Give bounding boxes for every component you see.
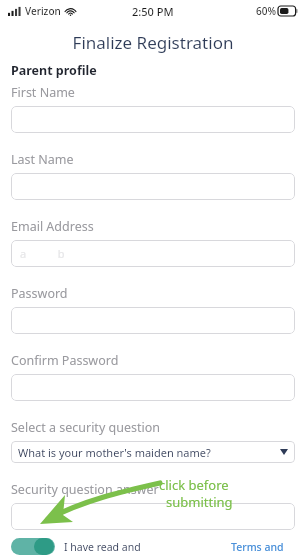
- staticText: a b: [20, 246, 65, 261]
- button[interactable]: Confirm Password: [11, 374, 295, 401]
- button[interactable]: Last Name: [11, 173, 295, 200]
- staticText: Select a security question: [11, 419, 160, 436]
- button[interactable]: Terms and: [231, 540, 284, 554]
- button[interactable]: Accept terms toggle: [11, 538, 55, 555]
- button[interactable]: Email Address: [11, 240, 295, 267]
- button[interactable]: What is your mother's maiden name?: [11, 441, 295, 463]
- button[interactable]: I have read and: [64, 540, 141, 554]
- button[interactable]: First Name: [11, 106, 295, 133]
- staticText: Security question answer: [11, 481, 159, 498]
- staticText: First Name: [11, 84, 75, 101]
- staticText: submitting: [166, 493, 233, 511]
- button[interactable]: Security question answer: [11, 503, 295, 530]
- staticText: Confirm Password: [11, 352, 119, 369]
- staticText: What is your mother's maiden name?: [18, 445, 211, 460]
- staticText: Parent profile: [11, 62, 97, 79]
- button[interactable]: Password: [11, 307, 295, 334]
- staticText: Verizon: [25, 4, 61, 18]
- staticText: Last Name: [11, 151, 74, 168]
- staticText: Password: [11, 285, 68, 302]
- staticText: 2:50 PM: [132, 4, 174, 19]
- staticText: 60%: [256, 4, 276, 18]
- staticText: Email Address: [11, 218, 94, 235]
- staticText: click before: [159, 476, 229, 494]
- staticText: Finalize Registration: [0, 31, 306, 54]
